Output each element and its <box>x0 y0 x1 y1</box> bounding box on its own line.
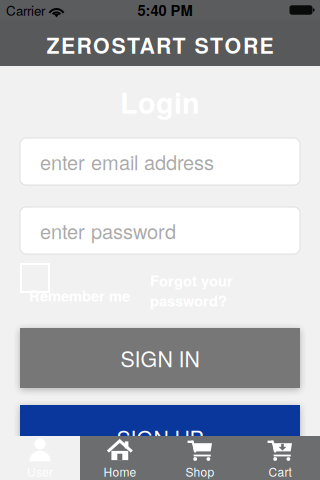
staticText: Forgot your <box>150 270 233 291</box>
staticText: ZEROSTART STORE <box>46 30 273 60</box>
button[interactable]: Shop <box>160 436 240 480</box>
staticText: Carrier <box>6 0 45 20</box>
staticText: Home <box>103 463 136 480</box>
staticText: Login <box>120 81 200 123</box>
staticText: Remember me <box>29 285 130 306</box>
button[interactable]: enter password <box>20 207 300 254</box>
staticText: SIGN IN <box>120 343 199 373</box>
button[interactable]: Home <box>80 436 160 480</box>
button[interactable]: SIGN UP <box>20 405 300 470</box>
button[interactable]: User <box>0 436 80 480</box>
button[interactable]: Forgot your <box>150 270 233 311</box>
staticText: password? <box>150 290 227 311</box>
button[interactable]: enter email address <box>20 138 300 185</box>
staticText: 5:40 PM <box>137 0 192 20</box>
staticText: User <box>27 463 53 480</box>
staticText: SIGN UP <box>116 422 203 453</box>
button[interactable]: SIGN IN <box>20 328 300 388</box>
button[interactable]: Cart <box>240 436 320 480</box>
staticText: Cart <box>268 463 291 480</box>
staticText: enter password <box>40 216 176 245</box>
button[interactable]: Remember me <box>20 263 138 310</box>
staticText: enter email address <box>40 147 214 176</box>
staticText: Shop <box>185 463 214 480</box>
